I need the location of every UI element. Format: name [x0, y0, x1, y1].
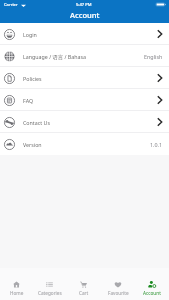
button[interactable]: Favourite — [101, 268, 135, 300]
staticText: Version — [23, 141, 42, 148]
button[interactable]: Contact Us — [0, 111, 169, 133]
staticText: 1.0.1 — [150, 141, 163, 148]
staticText: English — [144, 53, 163, 60]
button[interactable]: Account — [135, 268, 169, 300]
staticText: Cart — [79, 290, 89, 296]
staticText: Contact Us — [23, 119, 50, 126]
button[interactable]: Cart — [67, 268, 101, 300]
staticText: 5:47 PM — [76, 2, 92, 8]
button[interactable]: Login — [0, 23, 169, 45]
button[interactable]: Home — [0, 268, 33, 300]
staticText: Account — [70, 10, 100, 20]
button[interactable]: Version — [0, 133, 169, 155]
staticText: Account — [143, 290, 161, 296]
button[interactable]: Categories — [33, 268, 67, 300]
staticText: Carrier — [4, 2, 18, 8]
staticText: FAQ — [23, 97, 34, 104]
button[interactable]: Policies — [0, 67, 169, 89]
button[interactable]: Language / 语言 / Bahasa — [0, 45, 169, 67]
staticText: Login — [23, 31, 37, 38]
button[interactable]: FAQ — [0, 89, 169, 111]
staticText: Favourite — [108, 290, 129, 296]
staticText: Policies — [23, 75, 42, 82]
staticText: Categories — [38, 290, 62, 296]
staticText: Home — [10, 290, 24, 296]
staticText: Language / 语言 / Bahasa — [23, 53, 86, 60]
